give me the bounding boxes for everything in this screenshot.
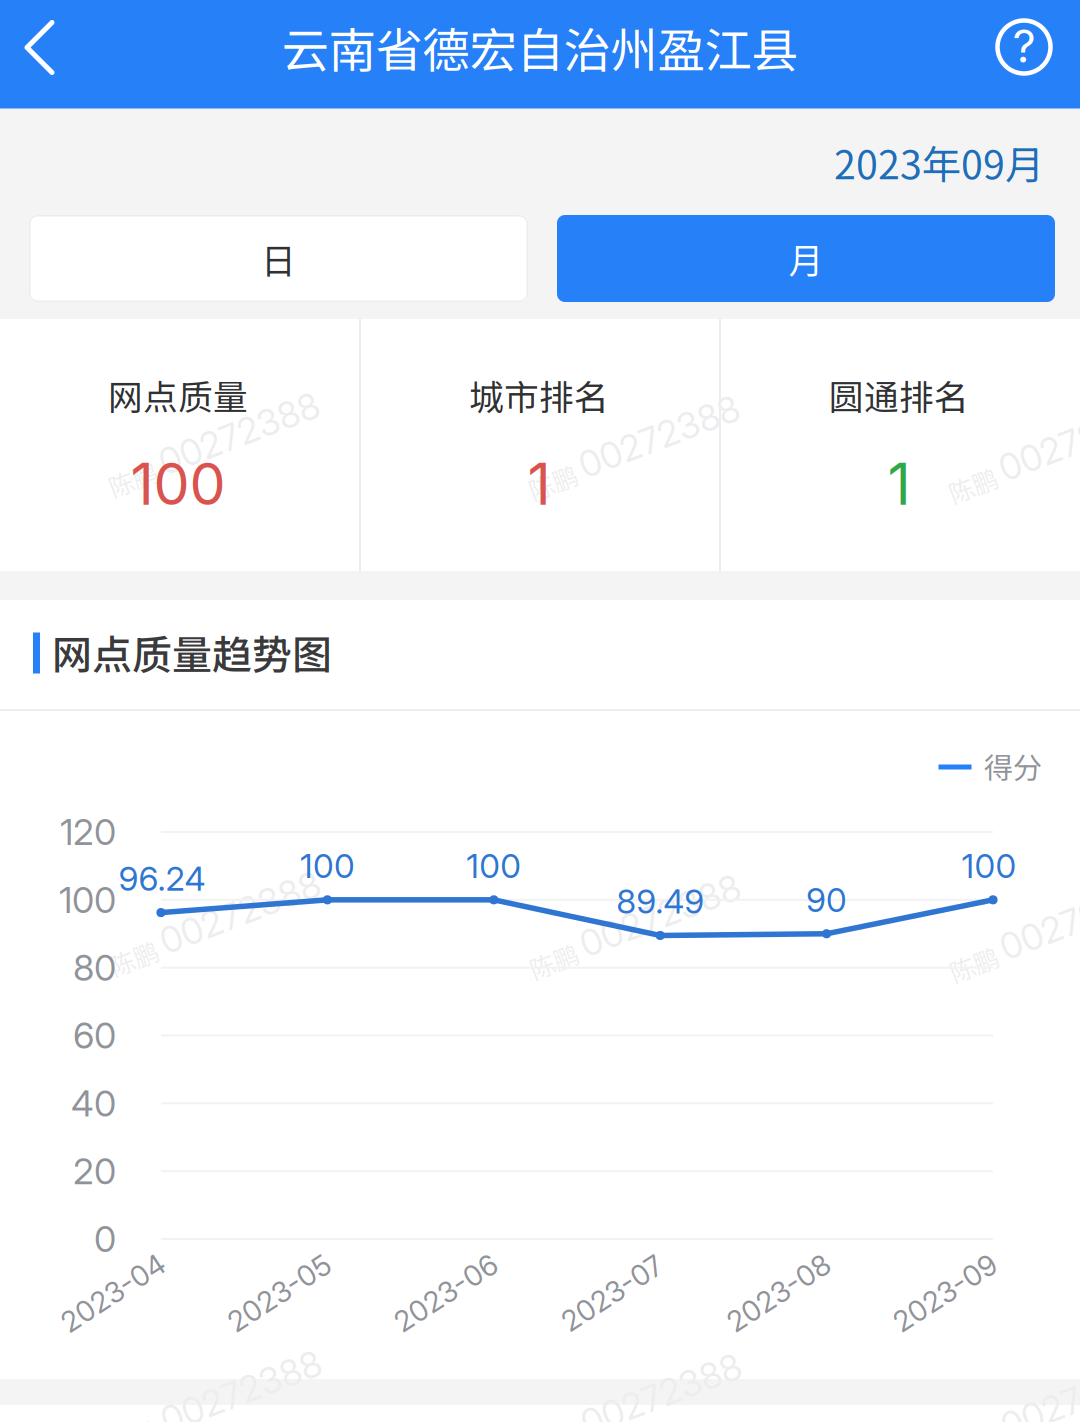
staticText: 2023-09 (886, 1276, 1003, 1310)
staticText: ? (1012, 19, 1035, 73)
staticText: 2023年09月 (834, 133, 1044, 190)
staticText: 陈鹏 00272388 (942, 1386, 1080, 1422)
staticText: 陈鹏 00272388 (100, 422, 325, 466)
button[interactable]: 城市排名 (361, 319, 719, 571)
staticText: 日 (261, 233, 296, 284)
staticText: 60 (73, 1014, 116, 1057)
staticText: 2023-07 (555, 1276, 670, 1310)
staticText: 2023-06 (387, 1276, 504, 1310)
button[interactable]: 网点质量 (1, 319, 359, 571)
staticText: 0 (94, 1217, 116, 1261)
staticText: 100 (466, 846, 521, 886)
staticText: 100 (59, 878, 116, 922)
staticText: 月 (788, 233, 823, 284)
staticText: 陈鹏 00272388 (940, 428, 1080, 472)
button[interactable]: Help (978, 0, 1070, 101)
staticText: 100 (130, 449, 225, 519)
staticText: 2023-04 (54, 1276, 172, 1310)
staticText: 2023-08 (720, 1276, 837, 1310)
button[interactable]: 圆通排名 (721, 319, 1079, 571)
staticText: 20 (73, 1149, 116, 1193)
staticText: 网点质量趋势图 (52, 623, 332, 681)
staticText: 80 (73, 946, 116, 989)
button[interactable]: 日 (29, 215, 528, 302)
staticText: 1 (527, 449, 550, 519)
staticText: 陈鹏 00272388 (521, 904, 746, 948)
staticText: 40 (71, 1082, 116, 1125)
staticText: 100 (961, 846, 1016, 886)
button[interactable]: Back (0, 0, 86, 102)
staticText: 陈鹏 00272388 (520, 425, 745, 469)
staticText: 陈鹏 00272388 (941, 907, 1080, 951)
button[interactable]: 月 (557, 215, 1055, 302)
staticText: 云南省德宏自治州盈江县 (281, 13, 798, 81)
staticText: 网点质量 (108, 370, 248, 420)
staticText: 陈鹏 00272388 (102, 1380, 327, 1422)
staticText: 90 (806, 880, 847, 920)
staticText: 圆通排名 (829, 370, 969, 420)
staticText: 陈鹏 00272388 (522, 1383, 747, 1422)
staticText: 1 (887, 449, 910, 519)
staticText: 陈鹏 00272388 (101, 901, 326, 945)
staticText: 城市排名 (469, 370, 609, 420)
staticText: 89.49 (616, 881, 704, 922)
staticText: 得分 (984, 745, 1042, 787)
staticText: 120 (60, 810, 116, 854)
staticText: 2023-05 (221, 1276, 338, 1310)
staticText: 96.24 (118, 858, 205, 899)
staticText: 100 (300, 846, 355, 886)
